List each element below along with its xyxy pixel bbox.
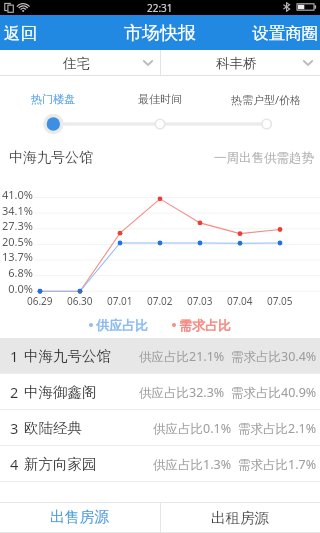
staticText: 出租房源 bbox=[211, 509, 269, 527]
staticText: 热需户型/价格 bbox=[231, 92, 302, 107]
staticText: 市场快报 bbox=[124, 22, 196, 45]
staticText: 供应占比32.3% bbox=[139, 384, 225, 401]
button[interactable]: 1 bbox=[0, 338, 320, 374]
staticText: 新方向家园 bbox=[24, 455, 97, 473]
staticText: 一周出售供需趋势 bbox=[214, 150, 314, 166]
staticText: 13.7% bbox=[2, 249, 33, 264]
staticText: 需求占比30.4% bbox=[231, 348, 317, 365]
staticText: 41.0% bbox=[2, 187, 33, 202]
staticText: 设置商圈 bbox=[252, 23, 318, 44]
staticText: 1 bbox=[10, 346, 19, 366]
button[interactable]: 科丰桥 bbox=[160, 50, 320, 76]
staticText: 需求占比40.9% bbox=[231, 384, 317, 401]
staticText: 34.1% bbox=[2, 203, 33, 218]
button[interactable]: 返回 bbox=[0, 15, 47, 50]
staticText: 需求占比1.7% bbox=[238, 456, 317, 473]
staticText: 07.03 bbox=[187, 294, 213, 308]
staticText: 2 bbox=[10, 382, 19, 402]
staticText: 最佳时间 bbox=[138, 92, 182, 106]
staticText: 3 bbox=[10, 418, 19, 438]
staticText: 中海九号公馆 bbox=[9, 149, 93, 167]
staticText: 供应占比21.1% bbox=[139, 348, 225, 365]
staticText: 需求占比2.1% bbox=[238, 420, 317, 437]
staticText: 6.8% bbox=[8, 265, 33, 280]
staticText: 22:31 bbox=[147, 1, 173, 15]
button[interactable]: 设置商圈 bbox=[242, 15, 320, 50]
button[interactable]: 热需户型/价格 bbox=[213, 88, 320, 110]
staticText: 06.29 bbox=[27, 294, 53, 308]
staticText: 需求占比 bbox=[179, 317, 231, 333]
button[interactable]: 住宅 bbox=[0, 50, 160, 76]
staticText: 中海九号公馆 bbox=[24, 347, 111, 365]
staticText: 07.01 bbox=[107, 294, 133, 308]
button[interactable]: 最佳时间 bbox=[106, 88, 213, 110]
staticText: 出售房源 bbox=[50, 508, 110, 527]
staticText: 07.02 bbox=[147, 294, 173, 308]
staticText: 供应占比0.1% bbox=[153, 420, 232, 437]
button[interactable]: 2 bbox=[0, 374, 320, 410]
staticText: 返回 bbox=[4, 23, 37, 44]
staticText: 住宅 bbox=[63, 55, 90, 72]
staticText: 欧陆经典 bbox=[24, 419, 82, 437]
staticText: 热门楼盘 bbox=[31, 92, 75, 106]
staticText: 20.5% bbox=[2, 234, 33, 249]
staticText: 供应占比 bbox=[96, 317, 148, 333]
button[interactable]: 热门楼盘 bbox=[0, 88, 106, 110]
staticText: 27.3% bbox=[2, 218, 33, 233]
staticText: 06.30 bbox=[67, 294, 93, 308]
button[interactable]: 出租房源 bbox=[160, 502, 320, 533]
staticText: 供应占比1.3% bbox=[153, 456, 232, 473]
staticText: 07.04 bbox=[227, 294, 253, 308]
staticText: 0.0% bbox=[8, 281, 33, 296]
button[interactable]: 3 bbox=[0, 410, 320, 446]
staticText: 科丰桥 bbox=[216, 55, 257, 72]
button[interactable]: 4 bbox=[0, 446, 320, 482]
staticText: 4 bbox=[10, 454, 19, 474]
staticText: 中海御鑫阁 bbox=[24, 383, 97, 401]
button[interactable]: 出售房源 bbox=[0, 502, 160, 533]
staticText: 07.05 bbox=[267, 294, 293, 308]
